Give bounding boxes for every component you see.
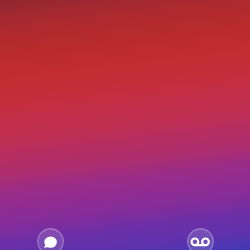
button[interactable]: Messages bbox=[37, 228, 64, 250]
button[interactable]: Voicemail bbox=[187, 228, 214, 250]
